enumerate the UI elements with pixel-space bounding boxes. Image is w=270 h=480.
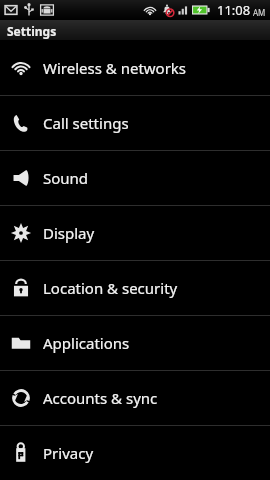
staticText: Applications: [43, 333, 130, 353]
staticText: Sound: [43, 168, 89, 188]
staticText: 11:08: [217, 1, 251, 19]
button[interactable]: Location & security: [0, 261, 270, 315]
staticText: Privacy: [43, 443, 94, 463]
staticText: AM: [253, 7, 266, 18]
staticText: Display: [43, 223, 95, 243]
button[interactable]: Privacy: [0, 426, 270, 480]
staticText: Settings: [7, 23, 57, 39]
button[interactable]: Applications: [0, 316, 270, 370]
button[interactable]: Sound: [0, 151, 270, 205]
staticText: Location & security: [43, 278, 178, 298]
button[interactable]: Call settings: [0, 96, 270, 150]
button[interactable]: Wireless & networks: [0, 41, 270, 95]
button[interactable]: Display: [0, 206, 270, 260]
staticText: Wireless & networks: [43, 58, 187, 78]
staticText: Accounts & sync: [43, 388, 158, 408]
staticText: Call settings: [43, 113, 129, 133]
button[interactable]: Accounts & sync: [0, 371, 270, 425]
